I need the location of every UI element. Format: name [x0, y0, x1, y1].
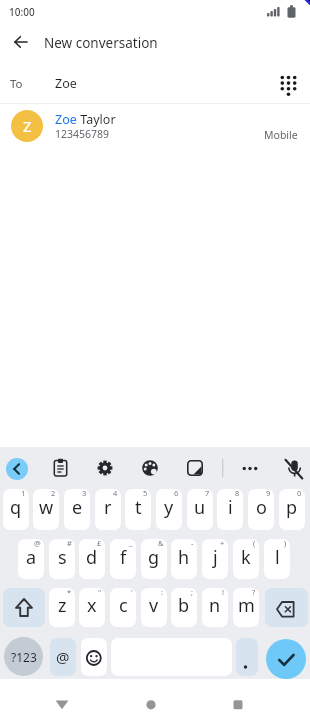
staticText: 5 [143, 489, 148, 498]
staticText: 4 [113, 489, 118, 498]
staticText: 3 [82, 489, 87, 498]
staticText: : [161, 588, 164, 597]
button[interactable]: f [110, 539, 136, 579]
button[interactable]: Z [0, 104, 310, 152]
button[interactable] [50, 457, 72, 479]
staticText: m [238, 593, 255, 618]
staticText: o [256, 495, 267, 520]
staticText: 8 [235, 489, 240, 498]
button[interactable]: m [233, 588, 259, 627]
staticText: ! [222, 588, 225, 597]
button[interactable] [50, 692, 74, 716]
button[interactable] [7, 28, 35, 56]
button[interactable]: ?123 [4, 637, 43, 676]
staticText: * [67, 588, 72, 597]
staticText: w [39, 495, 54, 520]
button[interactable] [276, 72, 302, 100]
staticText: j [213, 545, 218, 570]
button[interactable]: w [33, 489, 59, 530]
button[interactable]: c [110, 588, 136, 627]
staticText: s [58, 545, 67, 570]
staticText: 7 [205, 489, 210, 498]
button[interactable]: h [171, 539, 197, 579]
button[interactable]: r [95, 489, 121, 530]
button[interactable]: k [233, 539, 259, 579]
button[interactable]: j [202, 539, 228, 579]
staticText: b [178, 593, 190, 618]
button[interactable]: z [49, 588, 75, 627]
staticText: r [104, 495, 112, 520]
staticText: £ [97, 539, 102, 548]
button[interactable]: u [187, 489, 213, 530]
button[interactable] [81, 638, 107, 676]
staticText: g [148, 545, 160, 570]
button[interactable] [94, 457, 116, 479]
staticText: Mobile [264, 128, 298, 142]
button[interactable] [139, 457, 161, 479]
staticText: z [58, 593, 67, 618]
staticText: 1 [21, 489, 26, 498]
staticText: f [120, 545, 127, 570]
button[interactable] [265, 588, 308, 627]
button[interactable] [139, 692, 163, 716]
button[interactable]: @ [50, 638, 76, 676]
staticText: x [87, 593, 97, 618]
button[interactable] [236, 638, 258, 676]
staticText: n [209, 593, 221, 618]
staticText: h [178, 545, 190, 570]
staticText: & [158, 539, 164, 548]
staticText: c [119, 593, 128, 618]
staticText: _ [129, 539, 133, 548]
staticText: ? [252, 588, 256, 597]
button[interactable] [283, 457, 305, 479]
button[interactable]: b [171, 588, 197, 627]
button[interactable]: o [248, 489, 274, 530]
button[interactable]: p [279, 489, 305, 530]
staticText: 0 [297, 489, 302, 498]
staticText: @ [56, 647, 70, 667]
button[interactable]: To [0, 64, 310, 103]
staticText: New conversation [44, 34, 158, 52]
staticText: ) [284, 539, 287, 548]
staticText: 123456789 [55, 127, 110, 141]
button[interactable]: v [141, 588, 167, 627]
button[interactable] [266, 639, 306, 679]
staticText: d [86, 545, 98, 570]
button[interactable]: t [125, 489, 151, 530]
staticText: k [241, 545, 251, 570]
button[interactable]: e [64, 489, 90, 530]
button[interactable]: i [217, 489, 243, 530]
staticText: ; [191, 588, 194, 597]
staticText: To [10, 76, 23, 92]
button[interactable]: q [3, 489, 29, 530]
button[interactable]: l [264, 539, 290, 579]
staticText: - [191, 539, 194, 548]
staticText: 10:00 [9, 5, 35, 19]
staticText: Zoe [55, 111, 77, 128]
button[interactable]: a [18, 539, 44, 579]
staticText: ?123 [11, 649, 37, 665]
staticText: v [149, 593, 159, 618]
button[interactable] [226, 692, 250, 716]
button[interactable]: s [49, 539, 75, 579]
staticText: 6 [174, 489, 179, 498]
button[interactable] [184, 457, 206, 479]
button[interactable]: g [141, 539, 167, 579]
button[interactable]: y [156, 489, 182, 530]
staticText: ( [253, 539, 256, 548]
staticText: ' [131, 588, 133, 597]
button[interactable] [6, 458, 28, 480]
staticText: " [98, 588, 102, 597]
staticText: u [194, 495, 206, 520]
staticText: # [67, 539, 72, 548]
button[interactable]: n [202, 588, 228, 627]
button[interactable] [3, 588, 45, 627]
button[interactable] [239, 457, 261, 479]
button[interactable]: d [79, 539, 105, 579]
button[interactable]: x [79, 588, 105, 627]
staticText: l [275, 545, 280, 570]
staticText: + [220, 539, 225, 548]
staticText: Taylor [77, 111, 116, 128]
staticText: @ [34, 539, 41, 548]
